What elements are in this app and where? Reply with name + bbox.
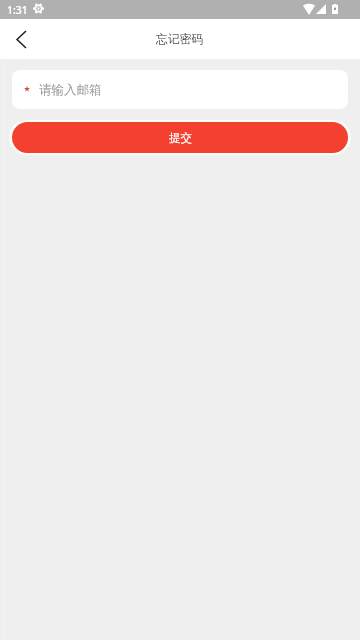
staticText: 请输入邮箱 [39,82,102,98]
staticText: 忘记密码 [156,32,204,47]
button[interactable]: 提交 [12,122,348,153]
staticText: 1:31 [7,3,28,17]
staticText: 提交 [169,131,192,145]
button[interactable]: Back [1,19,41,59]
button[interactable]: 请输入邮箱 [12,70,348,109]
